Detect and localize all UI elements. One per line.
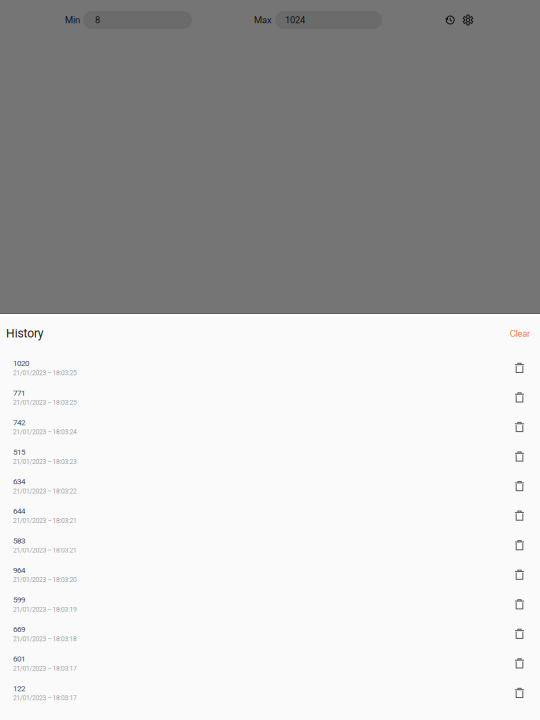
staticText: 122 [13,684,25,693]
staticText: 964 [13,565,25,575]
staticText: 1020 [13,359,29,368]
staticText: 771 [13,388,25,398]
staticText: 634 [13,477,25,486]
button[interactable]: 964 [0,560,540,589]
button[interactable]: 1024 [275,11,382,29]
button[interactable]: Clear [505,324,535,343]
button[interactable]: Settings [459,11,476,29]
staticText: History [6,326,44,341]
button[interactable]: 122 [0,678,540,708]
staticText: 21/01/2023 – 18:03:24 [13,428,77,436]
staticText: 1024 [285,14,305,25]
staticText: 644 [13,506,25,516]
button[interactable]: 742 [0,412,540,442]
staticText: 21/01/2023 – 18:03:19 [13,605,77,613]
button[interactable]: 644 [0,501,540,530]
button[interactable]: 771 [0,383,540,412]
staticText: Clear [510,328,530,339]
button[interactable]: 583 [0,530,540,560]
staticText: 21/01/2023 – 18:03:25 [13,399,77,406]
staticText: 742 [13,418,25,427]
button[interactable]: 601 [0,648,540,678]
staticText: 21/01/2023 – 18:03:20 [13,576,77,584]
staticText: Min [65,14,80,25]
staticText: 515 [13,447,25,457]
staticText: 8 [95,14,100,25]
staticText: 21/01/2023 – 18:03:18 [13,635,77,643]
staticText: 21/01/2023 – 18:03:21 [13,546,77,554]
button[interactable]: 634 [0,471,540,501]
staticText: 601 [13,654,25,664]
staticText: 21/01/2023 – 18:03:21 [13,517,77,525]
button[interactable]: History [441,11,459,29]
button[interactable]: 1020 [0,353,540,383]
button[interactable]: 669 [0,619,540,649]
staticText: 21/01/2023 – 18:03:25 [13,369,77,377]
staticText: Max [254,14,272,25]
staticText: 599 [13,595,25,604]
staticText: 21/01/2023 – 18:03:17 [13,694,77,702]
staticText: 21/01/2023 – 18:03:23 [13,458,77,465]
staticText: 21/01/2023 – 18:03:17 [13,665,77,672]
staticText: 583 [13,536,25,545]
button[interactable]: 515 [0,442,540,471]
button[interactable]: 8 [83,11,192,29]
button[interactable]: 599 [0,589,540,619]
staticText: 21/01/2023 – 18:03:22 [13,487,77,495]
staticText: 669 [13,625,25,634]
